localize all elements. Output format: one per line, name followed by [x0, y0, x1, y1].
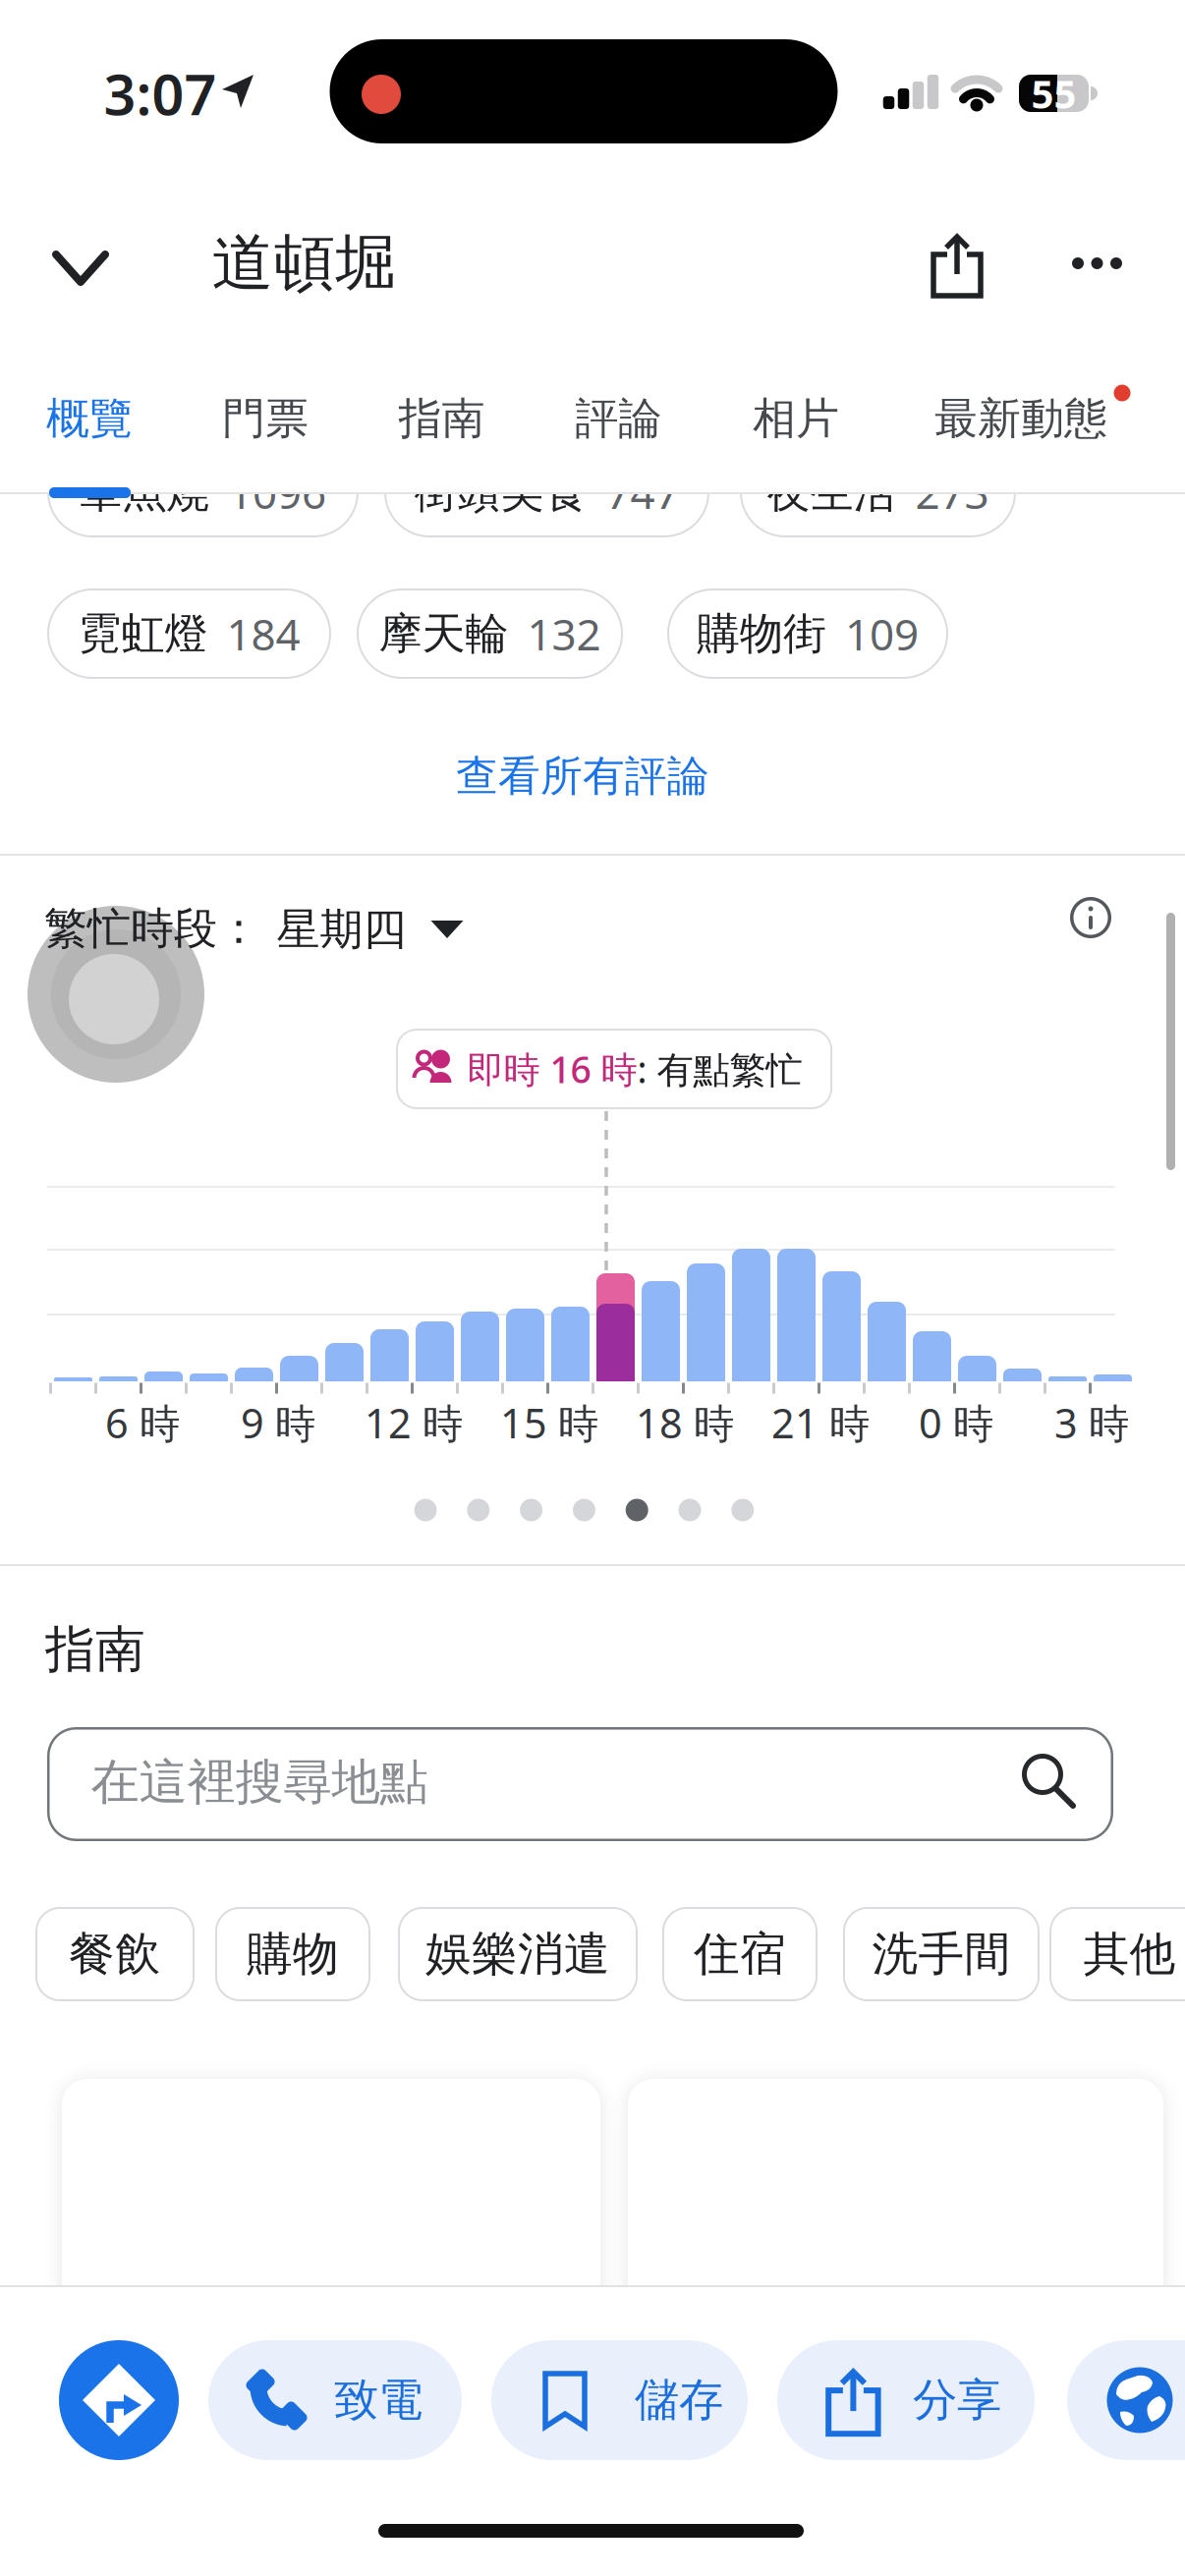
staticText: 3 時 — [1054, 1396, 1129, 1450]
button[interactable]: 購物街 — [667, 588, 948, 679]
button[interactable]: 購物 — [215, 1907, 370, 2001]
staticText: 洗手間 — [872, 1926, 1011, 1982]
button[interactable]: About busy times — [1070, 897, 1111, 938]
staticText: 其他 — [1083, 1926, 1176, 1982]
staticText: 即時 16 時 — [467, 1045, 637, 1093]
staticText: 最新動態 — [934, 392, 1107, 445]
staticText: 儲存 — [635, 2373, 723, 2428]
button[interactable]: 儲存 — [491, 2340, 748, 2460]
button[interactable]: Directions — [59, 2340, 179, 2460]
button[interactable]: 致電 — [208, 2340, 462, 2460]
staticText: 12 時 — [365, 1396, 463, 1450]
staticText: 18 時 — [636, 1396, 734, 1450]
staticText: 街頭美食 — [414, 466, 587, 519]
staticText: 9 時 — [241, 1396, 315, 1450]
button[interactable]: Search places here — [47, 1727, 1113, 1841]
button[interactable]: 住宿 — [662, 1907, 818, 2001]
staticText: 15 時 — [500, 1396, 598, 1450]
staticText: 概覽 — [46, 392, 133, 445]
button[interactable]: 街頭美食 — [384, 447, 709, 537]
staticText: 109 — [845, 605, 919, 662]
button[interactable]: 查看所有評論 — [456, 750, 709, 802]
staticText: 132 — [527, 605, 601, 662]
button[interactable]: 霓虹燈 — [47, 588, 331, 679]
button[interactable]: 洗手間 — [843, 1907, 1040, 2001]
button[interactable]: 概覽 — [46, 392, 133, 445]
staticText: 0 時 — [919, 1396, 993, 1450]
staticText: 摩天輪 — [379, 607, 508, 660]
staticText: 章魚燒 — [80, 466, 209, 519]
staticText: 1096 — [228, 464, 326, 521]
staticText: 道頓堀 — [212, 225, 397, 301]
staticText: 星期四 — [277, 903, 406, 956]
staticText: 6 時 — [105, 1396, 180, 1450]
staticText: 繁忙時段： — [44, 902, 260, 955]
button[interactable]: Place card — [62, 2079, 600, 2472]
staticText: 購物街 — [697, 607, 826, 660]
staticText: 55 — [1031, 67, 1076, 119]
staticText: 相片 — [753, 392, 839, 445]
staticText: 購物 — [247, 1926, 339, 1982]
staticText: 273 — [915, 464, 989, 521]
staticText: 霓虹燈 — [78, 607, 208, 660]
button[interactable]: Collapse place sheet — [51, 250, 110, 287]
button[interactable]: Website — [1067, 2340, 1185, 2460]
staticText: 指南 — [398, 392, 485, 445]
staticText: 747 — [606, 464, 679, 521]
staticText: 致電 — [334, 2373, 423, 2428]
staticText: 184 — [226, 605, 300, 662]
button[interactable]: 章魚燒 — [47, 447, 359, 537]
staticText: 查看所有評論 — [456, 750, 709, 802]
staticText: 3:07 — [104, 56, 217, 131]
button[interactable]: 其他 — [1049, 1907, 1185, 2001]
button[interactable]: Share — [930, 233, 985, 296]
staticText: 娛樂消遣 — [425, 1926, 610, 1982]
staticText: 在這裡搜尋地點 — [91, 1752, 428, 1812]
button[interactable]: 摩天輪 — [357, 588, 623, 679]
button[interactable]: 門票 — [222, 392, 309, 445]
staticText: 評論 — [575, 392, 662, 445]
staticText: 夜生活 — [767, 466, 897, 519]
staticText: 分享 — [913, 2373, 1001, 2428]
staticText: : 有點繁忙 — [637, 1045, 802, 1093]
button[interactable]: 指南 — [398, 392, 485, 445]
button[interactable]: 娛樂消遣 — [398, 1907, 638, 2001]
button[interactable]: 最新動態 — [934, 392, 1107, 445]
staticText: 住宿 — [694, 1926, 786, 1982]
button[interactable]: 相片 — [753, 392, 839, 445]
staticText: 餐飲 — [69, 1926, 161, 1982]
button[interactable]: 餐飲 — [35, 1907, 195, 2001]
staticText: 門票 — [222, 392, 309, 445]
button[interactable]: Choose day — [277, 903, 463, 956]
button[interactable]: Place card — [628, 2079, 1163, 2472]
button[interactable]: 分享 — [777, 2340, 1035, 2460]
staticText: 指南 — [45, 1619, 145, 1680]
button[interactable]: 評論 — [575, 392, 662, 445]
button[interactable]: More options — [1072, 257, 1122, 269]
button[interactable]: 夜生活 — [740, 447, 1016, 537]
staticText: 21 時 — [771, 1396, 870, 1450]
